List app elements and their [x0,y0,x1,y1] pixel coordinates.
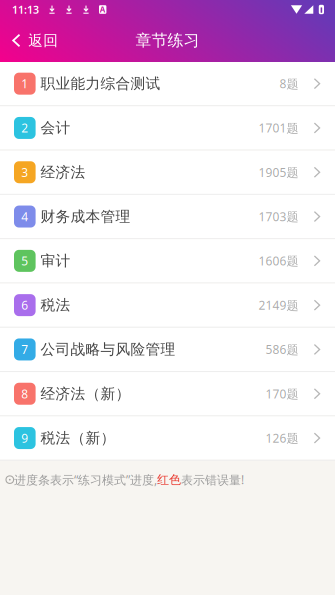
staticText: 章节练习 [135,31,199,50]
staticText: 2 [21,120,28,136]
button[interactable]: 4 [0,195,335,238]
staticText: 职业能力综合测试 [41,75,161,93]
button[interactable]: 返回 [0,19,68,62]
staticText: 税法（新） [41,429,116,447]
staticText: 红色 [157,472,181,487]
button[interactable]: 2 [0,106,335,150]
staticText: 3 [21,164,28,180]
staticText: 11:13 [12,2,39,17]
staticText: 财务成本管理 [41,207,131,225]
staticText: 公司战略与风险管理 [41,340,176,358]
staticText: 1703题 [258,209,298,224]
button[interactable]: 7 [0,328,335,371]
staticText: 经济法 [41,163,86,181]
staticText: 1905题 [258,164,298,180]
staticText: 4 [21,209,28,224]
staticText: 经济法（新） [41,385,131,403]
button[interactable]: 6 [0,283,335,327]
button[interactable]: 5 [0,239,335,282]
staticText: 审计 [41,252,71,270]
button[interactable]: 3 [0,151,335,194]
staticText: 170题 [265,386,298,402]
staticText: 2149题 [258,297,298,313]
staticText: 586题 [265,341,298,357]
staticText: 会计 [41,119,71,137]
staticText: 1 [21,76,28,92]
staticText: 7 [21,341,28,357]
button[interactable]: 9 [0,416,335,460]
button[interactable]: 8 [0,372,335,415]
staticText: 8题 [279,76,298,92]
staticText: 1701题 [258,120,298,136]
staticText: 6 [21,297,28,313]
staticText: 5 [21,253,28,269]
staticText: 1606题 [258,253,298,269]
staticText: 返回 [28,31,58,49]
staticText: 126题 [265,430,298,446]
staticText: A [100,4,106,15]
staticText: 表示错误量! [181,472,244,488]
button[interactable]: 1 [0,62,335,105]
staticText: 9 [21,430,28,446]
staticText: 税法 [41,296,71,314]
staticText: 8 [21,386,28,402]
staticText: 进度条表示“练习模式”进度, [14,472,157,488]
